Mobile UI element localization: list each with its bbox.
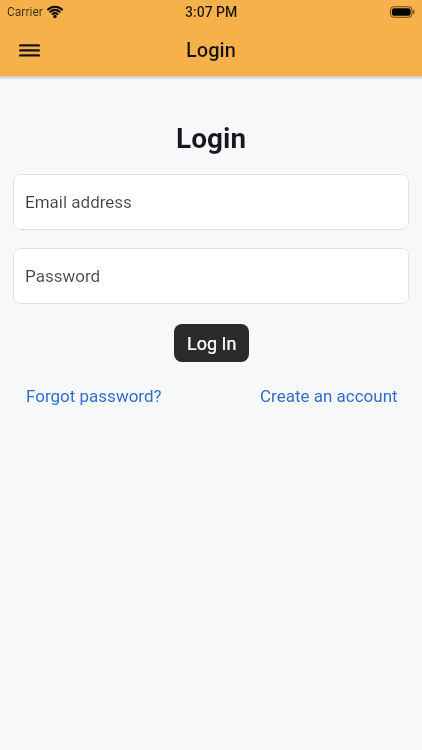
staticText: Password [25,266,101,286]
button[interactable]: Email address [13,174,409,230]
staticText: Carrier [7,5,43,19]
staticText: Create an account [260,386,398,406]
button[interactable]: Log In [174,324,249,362]
staticText: 3:07 PM [185,4,238,20]
button[interactable]: Forgot password? [26,386,162,406]
staticText: Login [186,38,236,61]
staticText: Email address [25,192,132,212]
button[interactable]: Create an account [260,386,398,406]
button[interactable] [13,34,45,66]
staticText: Log In [187,333,237,354]
button[interactable]: Password [13,248,409,304]
staticText: Login [176,122,247,155]
staticText: Forgot password? [26,386,162,406]
